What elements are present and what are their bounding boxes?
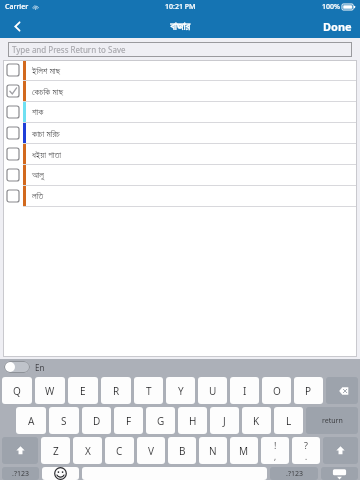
- button[interactable]: O: [262, 377, 291, 404]
- staticText: আলু: [32, 171, 44, 180]
- staticText: Carrier: [5, 2, 29, 12]
- button[interactable]: Z: [41, 437, 70, 464]
- staticText: ধইয়া পাতা: [32, 148, 62, 160]
- button[interactable]: .?123: [270, 467, 318, 480]
- button[interactable]: Done: [315, 14, 360, 38]
- button[interactable]: A: [16, 407, 46, 434]
- button[interactable]: K: [242, 407, 271, 434]
- button[interactable]: ধইয়া পাতা: [3, 144, 357, 165]
- button[interactable]: return: [306, 407, 358, 434]
- staticText: V: [148, 444, 154, 458]
- button[interactable]: P: [294, 377, 323, 404]
- staticText: W: [45, 384, 55, 398]
- staticText: En: [35, 362, 45, 373]
- staticText: Z: [53, 444, 59, 458]
- button[interactable]: Shift: [2, 437, 38, 464]
- button[interactable]: T: [134, 377, 163, 404]
- staticText: A: [28, 414, 35, 428]
- staticText: D: [93, 414, 101, 428]
- button[interactable]: F: [114, 407, 143, 434]
- button[interactable]: Language toggle: [4, 361, 30, 373]
- button[interactable]: [82, 467, 267, 480]
- button[interactable]: Shift: [323, 437, 358, 464]
- staticText: M: [239, 444, 249, 458]
- staticText: F: [126, 414, 132, 428]
- button[interactable]: Back: [0, 14, 34, 38]
- staticText: O: [273, 384, 281, 398]
- staticText: K: [253, 414, 260, 428]
- staticText: ?: [304, 439, 308, 451]
- button[interactable]: আলু: [3, 165, 357, 186]
- button[interactable]: E: [68, 377, 98, 404]
- staticText: ইলিশ মাছ: [32, 64, 61, 76]
- staticText: H: [189, 414, 197, 428]
- staticText: L: [286, 414, 292, 428]
- button[interactable]: ইলিশ মাছ: [3, 60, 357, 81]
- staticText: X: [85, 444, 91, 458]
- button[interactable]: Type and Press Return to Save: [8, 42, 352, 57]
- staticText: 100%: [322, 2, 340, 12]
- staticText: G: [157, 414, 165, 428]
- button[interactable]: R: [101, 377, 131, 404]
- staticText: .?123: [12, 469, 29, 479]
- staticText: 10:21 PM: [165, 2, 196, 12]
- button[interactable]: শাক: [3, 102, 357, 123]
- staticText: P: [305, 384, 312, 398]
- button[interactable]: H: [178, 407, 207, 434]
- button[interactable]: লতি: [3, 186, 357, 207]
- staticText: U: [209, 384, 217, 398]
- staticText: E: [80, 384, 86, 398]
- staticText: Y: [178, 384, 184, 398]
- button[interactable]: কেচকি মাছ: [3, 81, 357, 102]
- button[interactable]: D: [82, 407, 111, 434]
- staticText: T: [146, 384, 152, 398]
- button[interactable]: Y: [166, 377, 195, 404]
- staticText: বাজার: [170, 21, 190, 32]
- button[interactable]: B: [168, 437, 196, 464]
- staticText: Q: [13, 384, 21, 398]
- staticText: B: [179, 444, 186, 458]
- staticText: C: [116, 444, 123, 458]
- staticText: return: [322, 416, 343, 426]
- button[interactable]: !: [261, 437, 289, 464]
- button[interactable]: X: [73, 437, 102, 464]
- button[interactable]: L: [274, 407, 303, 434]
- button[interactable]: G: [146, 407, 175, 434]
- button[interactable]: Emoji: [42, 467, 79, 480]
- button[interactable]: V: [137, 437, 165, 464]
- button[interactable]: J: [210, 407, 239, 434]
- staticText: !: [274, 439, 277, 451]
- button[interactable]: .?123: [2, 467, 39, 480]
- button[interactable]: Backspace: [326, 377, 358, 404]
- button[interactable]: U: [198, 377, 227, 404]
- staticText: ,: [274, 451, 277, 462]
- button[interactable]: I: [230, 377, 259, 404]
- staticText: কাচা মরিচ: [32, 127, 60, 139]
- button[interactable]: S: [49, 407, 79, 434]
- staticText: S: [61, 414, 67, 428]
- staticText: N: [209, 444, 217, 458]
- button[interactable]: C: [105, 437, 134, 464]
- button[interactable]: Q: [2, 377, 32, 404]
- button[interactable]: M: [230, 437, 258, 464]
- staticText: R: [113, 384, 120, 398]
- staticText: লতি: [32, 192, 44, 201]
- staticText: J: [223, 414, 226, 428]
- staticText: Type and Press Return to Save: [12, 44, 126, 55]
- button[interactable]: কাচা মরিচ: [3, 123, 357, 144]
- staticText: .: [305, 451, 308, 462]
- staticText: I: [243, 384, 247, 398]
- button[interactable]: ?: [292, 437, 320, 464]
- staticText: কেচকি মাছ: [32, 85, 64, 97]
- staticText: শাক: [32, 108, 44, 117]
- button[interactable]: N: [199, 437, 227, 464]
- button[interactable]: Hide keyboard: [321, 467, 358, 480]
- button[interactable]: W: [35, 377, 65, 404]
- staticText: Done: [323, 19, 352, 34]
- staticText: .?123: [286, 469, 303, 479]
